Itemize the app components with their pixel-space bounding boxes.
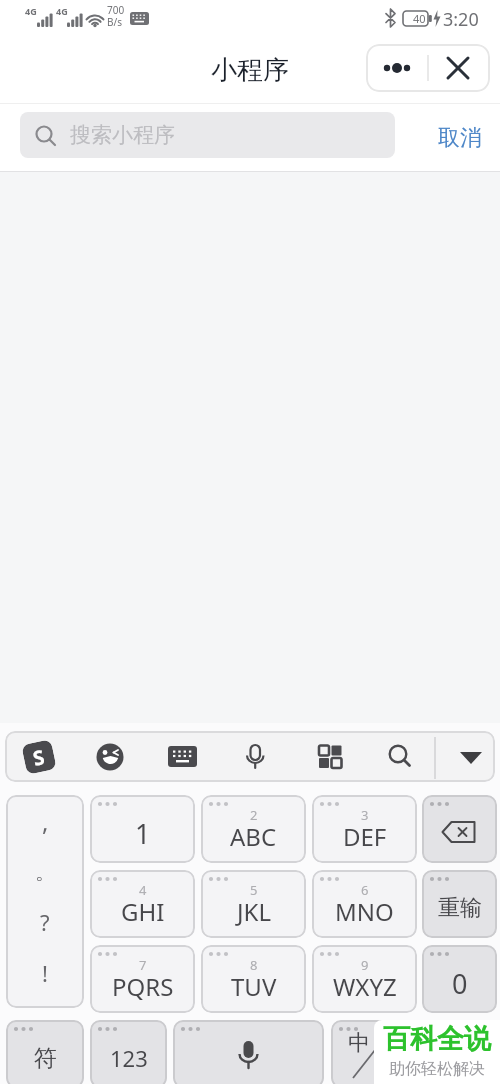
button[interactable]: 123 bbox=[90, 1020, 167, 1084]
button[interactable]: 取消 bbox=[420, 104, 500, 172]
staticText: 6 bbox=[361, 881, 369, 899]
button[interactable] bbox=[173, 1020, 324, 1084]
button[interactable]: S bbox=[21, 739, 57, 775]
staticText: 4G bbox=[25, 5, 37, 15]
button[interactable]: 重输 bbox=[422, 870, 497, 938]
button[interactable]: 0 bbox=[422, 945, 497, 1013]
staticText: 700 bbox=[107, 3, 125, 17]
staticText: 0 bbox=[452, 965, 468, 1002]
staticText: ? bbox=[40, 907, 50, 937]
button[interactable]: 8 bbox=[201, 945, 306, 1013]
staticText: 助你轻松解决 bbox=[389, 1059, 485, 1079]
staticText: 取消 bbox=[438, 124, 482, 152]
staticText: 1 bbox=[135, 815, 151, 852]
button[interactable] bbox=[65, 731, 125, 782]
staticText: 9 bbox=[361, 956, 369, 974]
button[interactable] bbox=[251, 731, 311, 782]
button[interactable]: 3 bbox=[312, 795, 417, 863]
staticText: GHI bbox=[121, 895, 165, 928]
staticText: 7 bbox=[139, 956, 147, 974]
button[interactable]: 5 bbox=[201, 870, 306, 938]
button[interactable]: 中 bbox=[331, 1020, 415, 1084]
staticText: 中 bbox=[348, 1029, 370, 1057]
staticText: MNO bbox=[335, 895, 394, 928]
staticText: 符 bbox=[34, 1044, 57, 1073]
staticText: TUV bbox=[231, 970, 277, 1003]
button[interactable]: 符 bbox=[6, 1020, 84, 1084]
staticText: JKL bbox=[237, 895, 271, 928]
staticText: 2 bbox=[250, 806, 258, 824]
staticText: S bbox=[30, 743, 48, 772]
button[interactable] bbox=[313, 731, 373, 782]
staticText: 123 bbox=[110, 1043, 148, 1073]
staticText: ! bbox=[42, 958, 48, 988]
staticText: 百科全说 bbox=[383, 1022, 491, 1056]
staticText: 小程序 bbox=[211, 54, 289, 87]
staticText: 搜索小程序 bbox=[70, 122, 175, 148]
staticText: B/s bbox=[107, 15, 123, 29]
staticText: 重输 bbox=[438, 894, 482, 922]
button[interactable] bbox=[127, 731, 187, 782]
staticText: 8 bbox=[250, 956, 258, 974]
button[interactable]: 1 bbox=[90, 795, 195, 863]
button[interactable]: 搜索小程序 bbox=[20, 112, 395, 158]
staticText: 3:20 bbox=[443, 7, 479, 32]
staticText: 4G bbox=[56, 5, 68, 15]
staticText: 。 bbox=[35, 860, 55, 885]
button[interactable] bbox=[428, 44, 490, 92]
staticText: 4 bbox=[139, 881, 147, 899]
staticText: , bbox=[42, 805, 49, 835]
staticText: 40 bbox=[413, 11, 426, 25]
button[interactable]: 9 bbox=[312, 945, 417, 1013]
button[interactable]: 2 bbox=[201, 795, 306, 863]
button[interactable] bbox=[366, 44, 428, 92]
staticText: 3 bbox=[361, 806, 369, 824]
button[interactable] bbox=[437, 731, 495, 782]
button[interactable]: 7 bbox=[90, 945, 195, 1013]
button[interactable]: 6 bbox=[312, 870, 417, 938]
staticText: DEF bbox=[343, 820, 387, 853]
button[interactable] bbox=[421, 1020, 497, 1084]
staticText: PQRS bbox=[112, 970, 174, 1003]
button[interactable] bbox=[189, 731, 249, 782]
staticText: ABC bbox=[230, 820, 277, 853]
button[interactable]: , bbox=[6, 795, 84, 1008]
button[interactable]: 4 bbox=[90, 870, 195, 938]
staticText: 5 bbox=[250, 881, 258, 899]
button[interactable] bbox=[375, 731, 435, 782]
staticText: WXYZ bbox=[333, 970, 397, 1003]
button[interactable] bbox=[422, 795, 497, 863]
